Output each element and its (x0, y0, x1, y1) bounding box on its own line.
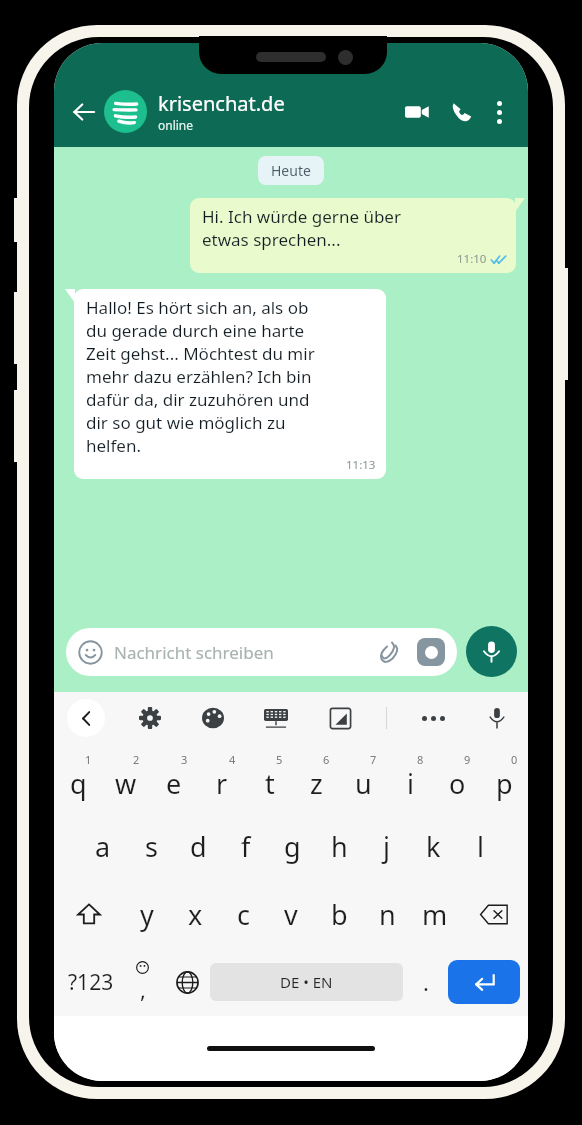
staticText: 6 (323, 752, 330, 767)
staticText: q (70, 765, 87, 802)
staticText: 2 (133, 752, 140, 767)
staticText: j (383, 828, 390, 865)
button[interactable]: 2 (102, 744, 150, 812)
button[interactable]: n (363, 880, 411, 948)
staticText: 11:10 (457, 251, 487, 267)
button[interactable]: Nachricht schreiben (66, 628, 457, 676)
button[interactable]: 5 (246, 744, 293, 812)
button[interactable]: Shift (54, 880, 123, 948)
button[interactable]: b (315, 880, 363, 948)
staticText: 9 (464, 752, 471, 767)
button[interactable]: Enter (448, 960, 520, 1004)
button[interactable]: Hi. Ich würde gerne über etwas sprechen.… (190, 198, 516, 273)
staticText: DE • EN (280, 972, 333, 992)
staticText: b (331, 896, 348, 933)
staticText: s (145, 828, 158, 865)
staticText: . (423, 967, 429, 997)
button[interactable]: Theme (195, 700, 231, 736)
staticText: n (379, 896, 396, 933)
staticText: c (237, 896, 250, 933)
button[interactable]: Backspace (459, 880, 528, 948)
button[interactable]: 0 (481, 744, 528, 812)
button[interactable]: Call (442, 92, 482, 132)
button[interactable]: More (415, 700, 451, 736)
staticText: o (449, 765, 466, 802)
button[interactable]: a (79, 812, 127, 880)
staticText: Hi. Ich würde gerne über etwas sprechen.… (202, 205, 401, 251)
button[interactable]: Back (67, 699, 105, 737)
button[interactable]: k (410, 812, 457, 880)
staticText: i (407, 765, 414, 802)
staticText: Hallo! Es hört sich an, als ob du gerade… (86, 296, 315, 457)
staticText: 3 (181, 752, 188, 767)
button[interactable]: 6 (293, 744, 340, 812)
staticText: 8 (417, 752, 424, 767)
staticText: 5 (276, 752, 283, 767)
button[interactable]: Change language (165, 948, 210, 1016)
button[interactable]: . (403, 948, 448, 1016)
button[interactable]: More options (483, 96, 515, 128)
staticText: x (188, 896, 203, 933)
staticText: ?123 (68, 968, 114, 997)
staticText: krisenchat.de (158, 90, 285, 117)
button[interactable]: krisenchat.de (158, 90, 397, 133)
staticText: , (140, 974, 146, 1004)
button[interactable]: 8 (387, 744, 434, 812)
staticText: 11:13 (346, 457, 376, 473)
button[interactable]: 4 (198, 744, 246, 812)
staticText: Nachricht schreiben (114, 641, 274, 664)
button[interactable]: 3 (150, 744, 198, 812)
staticText: Heute (271, 161, 311, 180)
button[interactable]: l (457, 812, 504, 880)
button[interactable]: ?123 (62, 948, 120, 1016)
staticText: r (216, 765, 228, 802)
staticText: a (95, 828, 111, 865)
button[interactable]: g (269, 812, 316, 880)
staticText: y (140, 896, 154, 933)
button[interactable]: 9 (434, 744, 481, 812)
button[interactable]: , (120, 948, 165, 1016)
staticText: e (166, 765, 182, 802)
staticText: 0 (511, 752, 518, 767)
staticText: h (331, 828, 348, 865)
staticText: 4 (229, 752, 236, 767)
staticText: k (426, 828, 441, 865)
staticText: l (477, 828, 484, 865)
staticText: m (422, 896, 448, 933)
button[interactable]: Voice input (479, 700, 515, 736)
button[interactable]: h (316, 812, 363, 880)
button[interactable]: Settings (132, 700, 168, 736)
staticText: w (115, 765, 137, 802)
button[interactable]: Back (67, 95, 101, 129)
staticText: u (355, 765, 372, 802)
staticText: p (496, 765, 513, 802)
button[interactable]: DE • EN (210, 963, 403, 1001)
button[interactable]: Keyboard (258, 700, 294, 736)
staticText: 7 (370, 752, 377, 767)
button[interactable]: x (171, 880, 219, 948)
button[interactable]: Camera (417, 638, 445, 666)
button[interactable]: Video call (397, 92, 437, 132)
staticText: z (310, 765, 323, 802)
button[interactable]: Attach (374, 637, 404, 667)
button[interactable]: s (127, 812, 175, 880)
staticText: t (265, 765, 275, 802)
button[interactable]: c (219, 880, 267, 948)
staticText: g (284, 828, 301, 865)
staticText: d (190, 828, 207, 865)
button[interactable]: m (411, 880, 459, 948)
button[interactable]: Hallo! Es hört sich an, als ob du gerade… (74, 289, 386, 479)
button[interactable]: j (363, 812, 410, 880)
staticText: v (284, 896, 298, 933)
staticText: 1 (85, 752, 92, 767)
button[interactable]: 7 (340, 744, 387, 812)
button[interactable]: Voice message (466, 626, 517, 677)
staticText: f (241, 828, 251, 865)
button[interactable]: y (123, 880, 171, 948)
staticText: online (158, 117, 194, 133)
button[interactable]: d (175, 812, 222, 880)
button[interactable]: f (222, 812, 269, 880)
button[interactable]: Resize (322, 700, 358, 736)
button[interactable]: v (267, 880, 315, 948)
button[interactable]: 1 (54, 744, 102, 812)
